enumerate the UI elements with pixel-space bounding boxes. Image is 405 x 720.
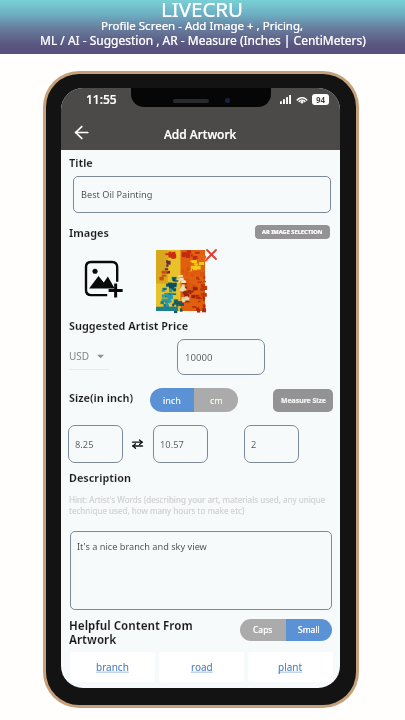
button[interactable]: 2 (244, 425, 299, 463)
button[interactable]: Measure Size (273, 389, 333, 412)
staticText: road (191, 660, 213, 674)
staticText: Best Oil Painting (81, 188, 153, 201)
staticText: 94 (316, 94, 326, 105)
button[interactable]: plant (248, 652, 333, 682)
button[interactable]: Remove image (207, 250, 217, 260)
staticText: Title (69, 155, 93, 170)
staticText: 10000 (185, 351, 213, 364)
staticText: Hint: Artist's Words (describing your ar… (69, 494, 326, 516)
staticText: ML / AI - Suggestion , AR - Measure (Inc… (40, 32, 366, 48)
button[interactable]: cm (194, 388, 238, 412)
staticText: 2 (251, 438, 257, 451)
button[interactable]: branch (70, 652, 155, 682)
button[interactable]: 10.57 (153, 425, 208, 463)
button[interactable]: Small (286, 619, 332, 641)
button[interactable]: Add image (86, 262, 125, 298)
staticText: Size(in inch) (69, 390, 134, 405)
button[interactable]: Best Oil Painting (73, 176, 331, 213)
button[interactable]: 8.25 (68, 425, 123, 463)
staticText: Description (69, 470, 131, 485)
staticText: plant (278, 660, 303, 674)
staticText: AR IMAGE SELECTION (262, 228, 323, 236)
staticText: Suggested Artist Price (69, 318, 189, 333)
button[interactable]: Back (67, 118, 95, 146)
staticText: inch (163, 394, 181, 406)
staticText: 8.25 (75, 438, 94, 451)
staticText: branch (96, 660, 129, 674)
button[interactable]: AR IMAGE SELECTION (255, 225, 330, 239)
staticText: Images (69, 225, 109, 240)
button[interactable]: USD (69, 349, 104, 363)
staticText: 11:55 (86, 91, 117, 107)
staticText: Helpful Content From Artwork (69, 618, 193, 647)
staticText: Small (298, 624, 320, 636)
button[interactable]: It's a nice branch and sky view (70, 531, 332, 610)
button[interactable]: inch (150, 388, 194, 412)
staticText: Profile Screen - Add Image + , Pricing, (101, 18, 304, 34)
staticText: It's a nice branch and sky view (77, 540, 207, 553)
staticText: Add Artwork (164, 126, 237, 142)
button[interactable]: Caps (240, 619, 286, 641)
staticText: Caps (253, 624, 273, 636)
button[interactable]: road (159, 652, 244, 682)
staticText: cm (210, 394, 223, 406)
staticText: 10.57 (160, 438, 184, 451)
button[interactable]: 10000 (177, 339, 265, 375)
staticText: LIVECRU (161, 0, 244, 23)
staticText: Measure Size (281, 396, 326, 405)
staticText: USD (69, 349, 90, 363)
